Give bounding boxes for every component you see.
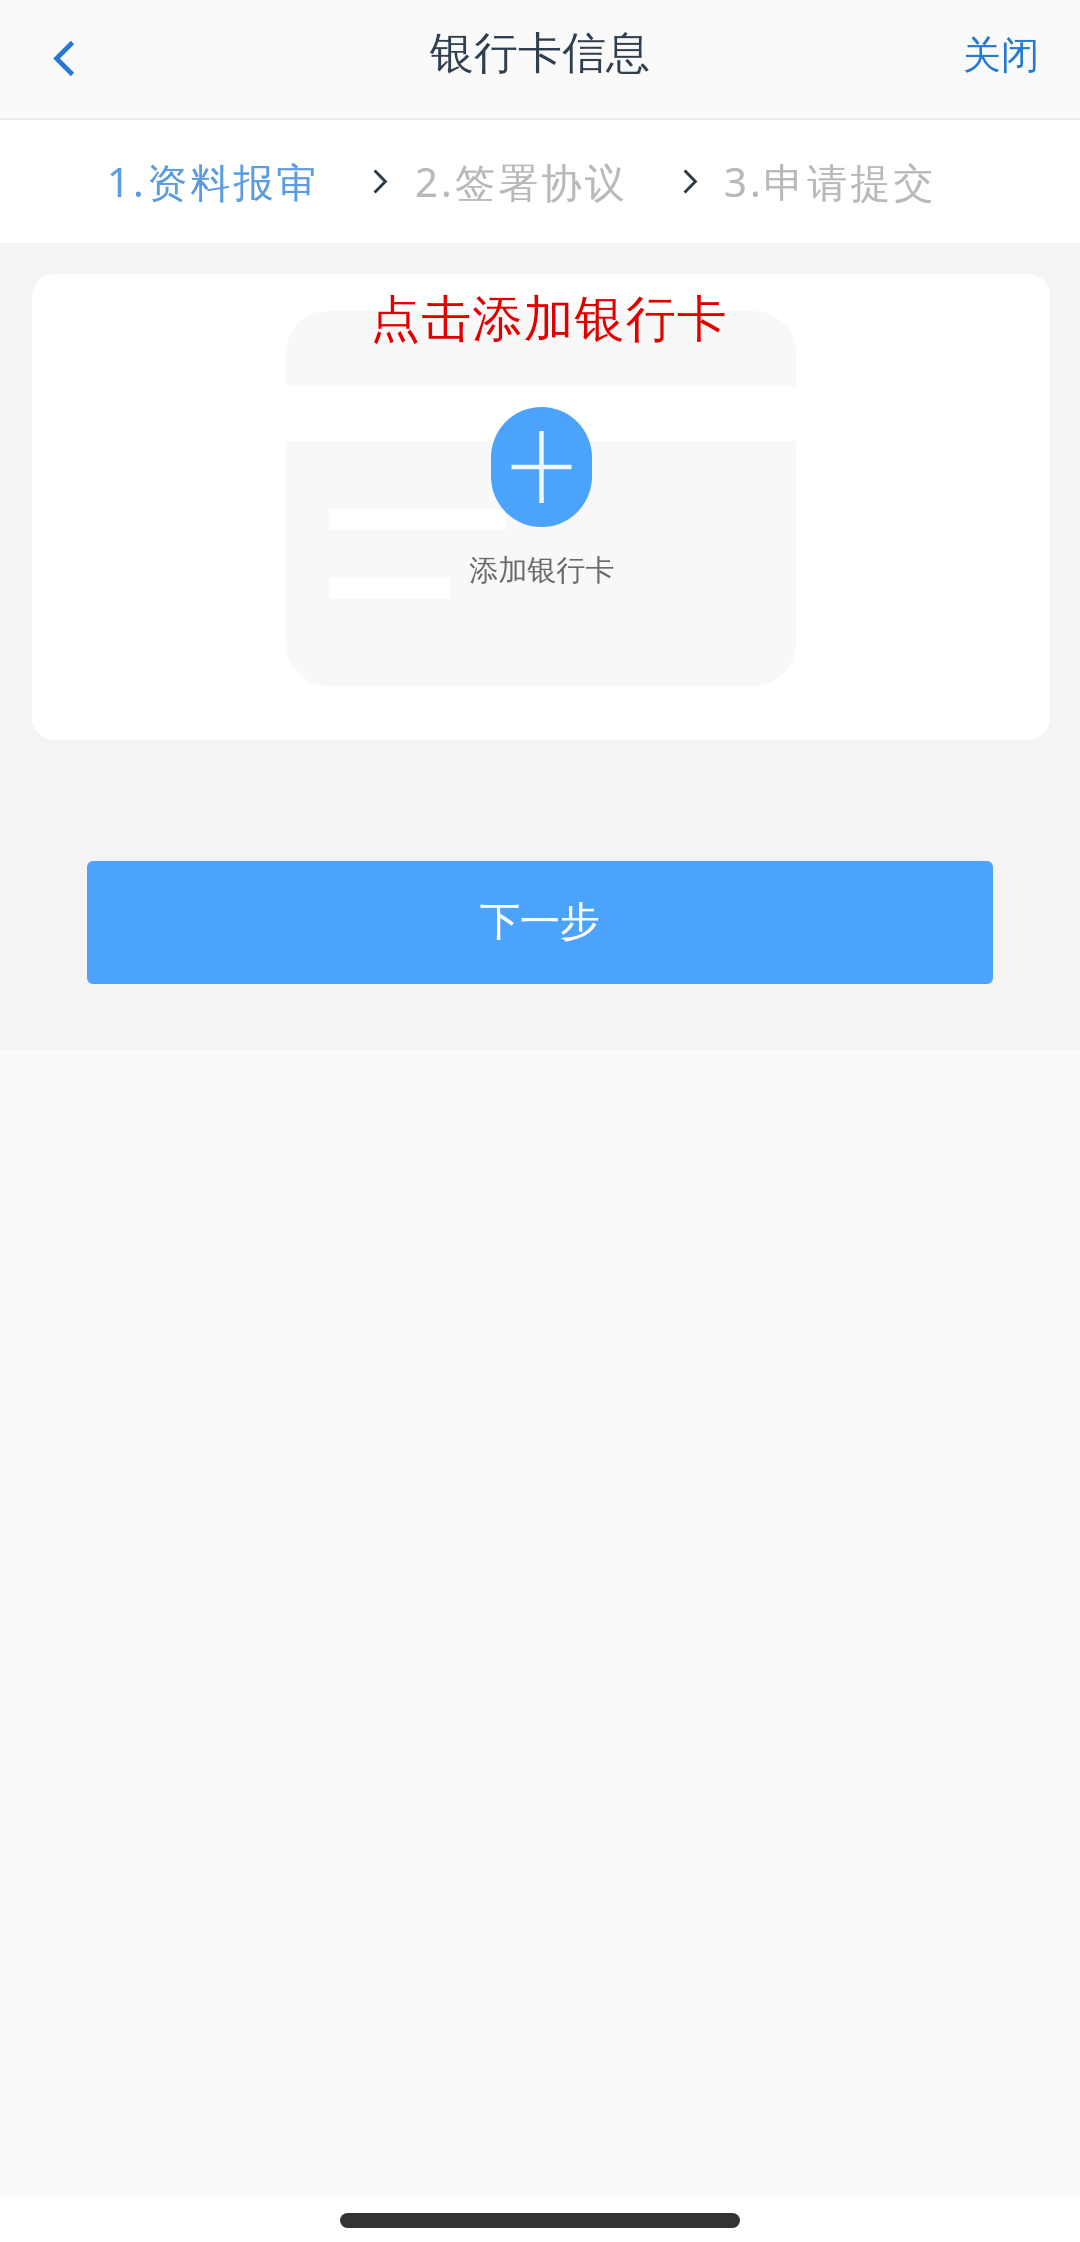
button[interactable]: Back — [0, 0, 118, 118]
staticText: 2.签署协议 — [415, 154, 628, 209]
button[interactable]: 1.资料报审 — [107, 154, 320, 209]
staticText: 1.资料报审 — [107, 154, 320, 209]
staticText: 点击添加银行卡 — [40, 288, 1050, 351]
other: Add bank card — [491, 407, 592, 527]
button[interactable]: 2.签署协议 — [415, 154, 628, 209]
staticText: 关闭 — [963, 31, 1039, 79]
button[interactable]: 3.申请提交 — [724, 154, 937, 209]
staticText: 3.申请提交 — [724, 154, 937, 209]
button[interactable]: 下一步 — [87, 861, 993, 984]
button[interactable] — [286, 311, 796, 686]
staticText: 添加银行卡 — [33, 552, 1050, 589]
button[interactable]: 关闭 — [919, 3, 1080, 107]
staticText: 银行卡信息 — [430, 26, 650, 81]
staticText: 下一步 — [480, 896, 600, 946]
